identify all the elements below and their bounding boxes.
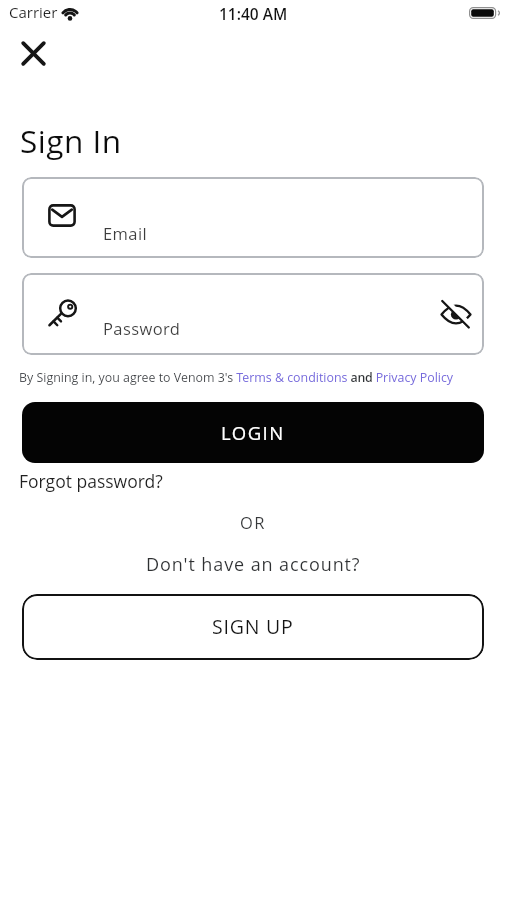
button[interactable]: SIGN UP: [22, 594, 484, 660]
button[interactable]: By Signing in, you agree to Venom 3's Te…: [19, 369, 454, 386]
staticText: OR: [240, 511, 267, 533]
staticText: Don't have an account?: [146, 552, 361, 577]
button[interactable]: [440, 301, 472, 328]
staticText: Carrier: [9, 2, 58, 22]
button[interactable]: LOGIN: [22, 402, 484, 463]
staticText: Email: [103, 222, 148, 244]
staticText: Sign In: [20, 119, 122, 162]
button[interactable]: Password: [22, 273, 484, 355]
staticText: Password: [103, 317, 181, 339]
staticText: 11:40 AM: [219, 3, 288, 24]
button[interactable]: [13, 33, 54, 74]
button[interactable]: Forgot password?: [19, 469, 163, 493]
staticText: SIGN UP: [212, 613, 294, 640]
button[interactable]: Email: [22, 177, 484, 258]
staticText: LOGIN: [221, 420, 285, 445]
